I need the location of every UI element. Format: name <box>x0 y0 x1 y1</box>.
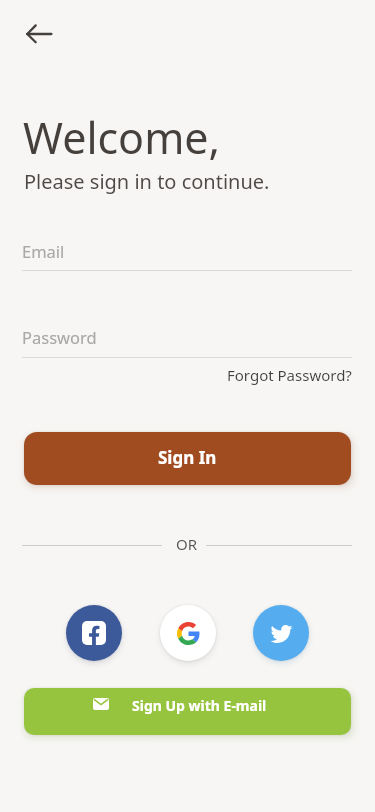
button[interactable] <box>160 605 216 661</box>
button[interactable] <box>66 605 122 661</box>
button[interactable]: Sign Up with E-mail <box>24 688 351 735</box>
staticText: Welcome, <box>23 108 221 167</box>
staticText: Email <box>22 240 65 262</box>
button[interactable]: Sign In <box>24 432 351 485</box>
staticText: Password <box>22 326 97 348</box>
button[interactable] <box>253 605 309 661</box>
staticText: Sign In <box>158 446 217 469</box>
button[interactable] <box>20 17 54 51</box>
staticText: Sign Up with E-mail <box>132 696 267 715</box>
button[interactable]: Forgot Password? <box>227 365 352 385</box>
staticText: Please sign in to continue. <box>24 168 270 195</box>
staticText: OR <box>176 534 198 554</box>
